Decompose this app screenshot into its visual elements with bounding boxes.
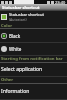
staticText: 23:40 xyxy=(55,0,66,4)
button[interactable]: Select application xyxy=(0,63,67,76)
staticText: Other xyxy=(1,77,14,82)
staticText: White xyxy=(9,46,22,52)
staticText: Black xyxy=(9,33,21,39)
staticText: Select application xyxy=(1,66,43,73)
staticText: (Autostart) xyxy=(9,17,27,22)
staticText: Information xyxy=(1,88,30,95)
button[interactable]: Statusbar shortcut xyxy=(0,11,67,23)
button[interactable]: Black xyxy=(0,29,67,42)
button[interactable]: Information xyxy=(0,84,67,99)
staticText: Color xyxy=(1,23,13,27)
staticText: Statusbar shortcut xyxy=(2,5,40,10)
staticText: Starting from notification bar xyxy=(1,56,63,61)
staticText: Statusbar shortcut xyxy=(9,12,44,17)
button[interactable]: White xyxy=(0,43,67,55)
